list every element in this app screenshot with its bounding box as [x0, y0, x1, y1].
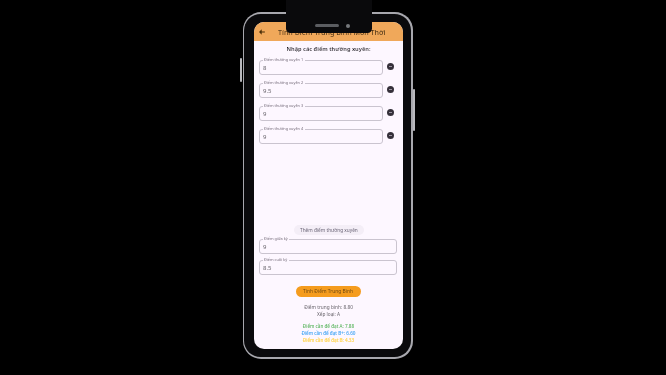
- staticText: Tính Điểm Trung Bình Môn Thời: [278, 27, 386, 37]
- button[interactable]: Back: [257, 27, 267, 37]
- staticText: Điểm trung bình: 8.80: [254, 304, 403, 310]
- button[interactable]: [259, 106, 383, 121]
- staticText: Tính Điểm Trung Bình: [303, 288, 354, 295]
- staticText: Điểm thường xuyên 3: [264, 103, 304, 108]
- staticText: 9: [263, 133, 267, 141]
- button[interactable]: Remove score: [387, 132, 394, 139]
- button[interactable]: Remove score: [387, 63, 394, 70]
- button[interactable]: Thêm điểm thường xuyên: [294, 225, 364, 235]
- staticText: Điểm cần để đạt A: 7.88: [254, 323, 403, 329]
- button[interactable]: [259, 260, 397, 275]
- staticText: 9: [263, 243, 267, 251]
- staticText: 8: [263, 64, 267, 72]
- button[interactable]: [259, 129, 383, 144]
- staticText: Điểm cần để đạt B: 4.33: [254, 337, 403, 343]
- staticText: Điểm cuối kỳ: [264, 257, 288, 262]
- staticText: Xếp loại: A: [254, 311, 403, 317]
- staticText: Điểm giữa kỳ: [264, 236, 288, 241]
- button[interactable]: [259, 239, 397, 254]
- staticText: Điểm thường xuyên 4: [264, 126, 304, 131]
- staticText: 9: [263, 110, 267, 118]
- button[interactable]: Remove score: [387, 109, 394, 116]
- staticText: Điểm thường xuyên 1: [264, 57, 304, 62]
- button[interactable]: [259, 83, 383, 98]
- button[interactable]: Remove score: [387, 86, 394, 93]
- staticText: Điểm cần để đạt B+: 6.60: [254, 330, 403, 336]
- button[interactable]: [259, 60, 383, 75]
- staticText: Nhập các điểm thường xuyên:: [254, 45, 403, 53]
- staticText: 9.5: [263, 87, 272, 95]
- button[interactable]: Tính Điểm Trung Bình: [296, 286, 361, 297]
- staticText: Điểm thường xuyên 2: [264, 80, 304, 85]
- staticText: Thêm điểm thường xuyên: [300, 227, 358, 233]
- staticText: 8.5: [263, 264, 272, 272]
